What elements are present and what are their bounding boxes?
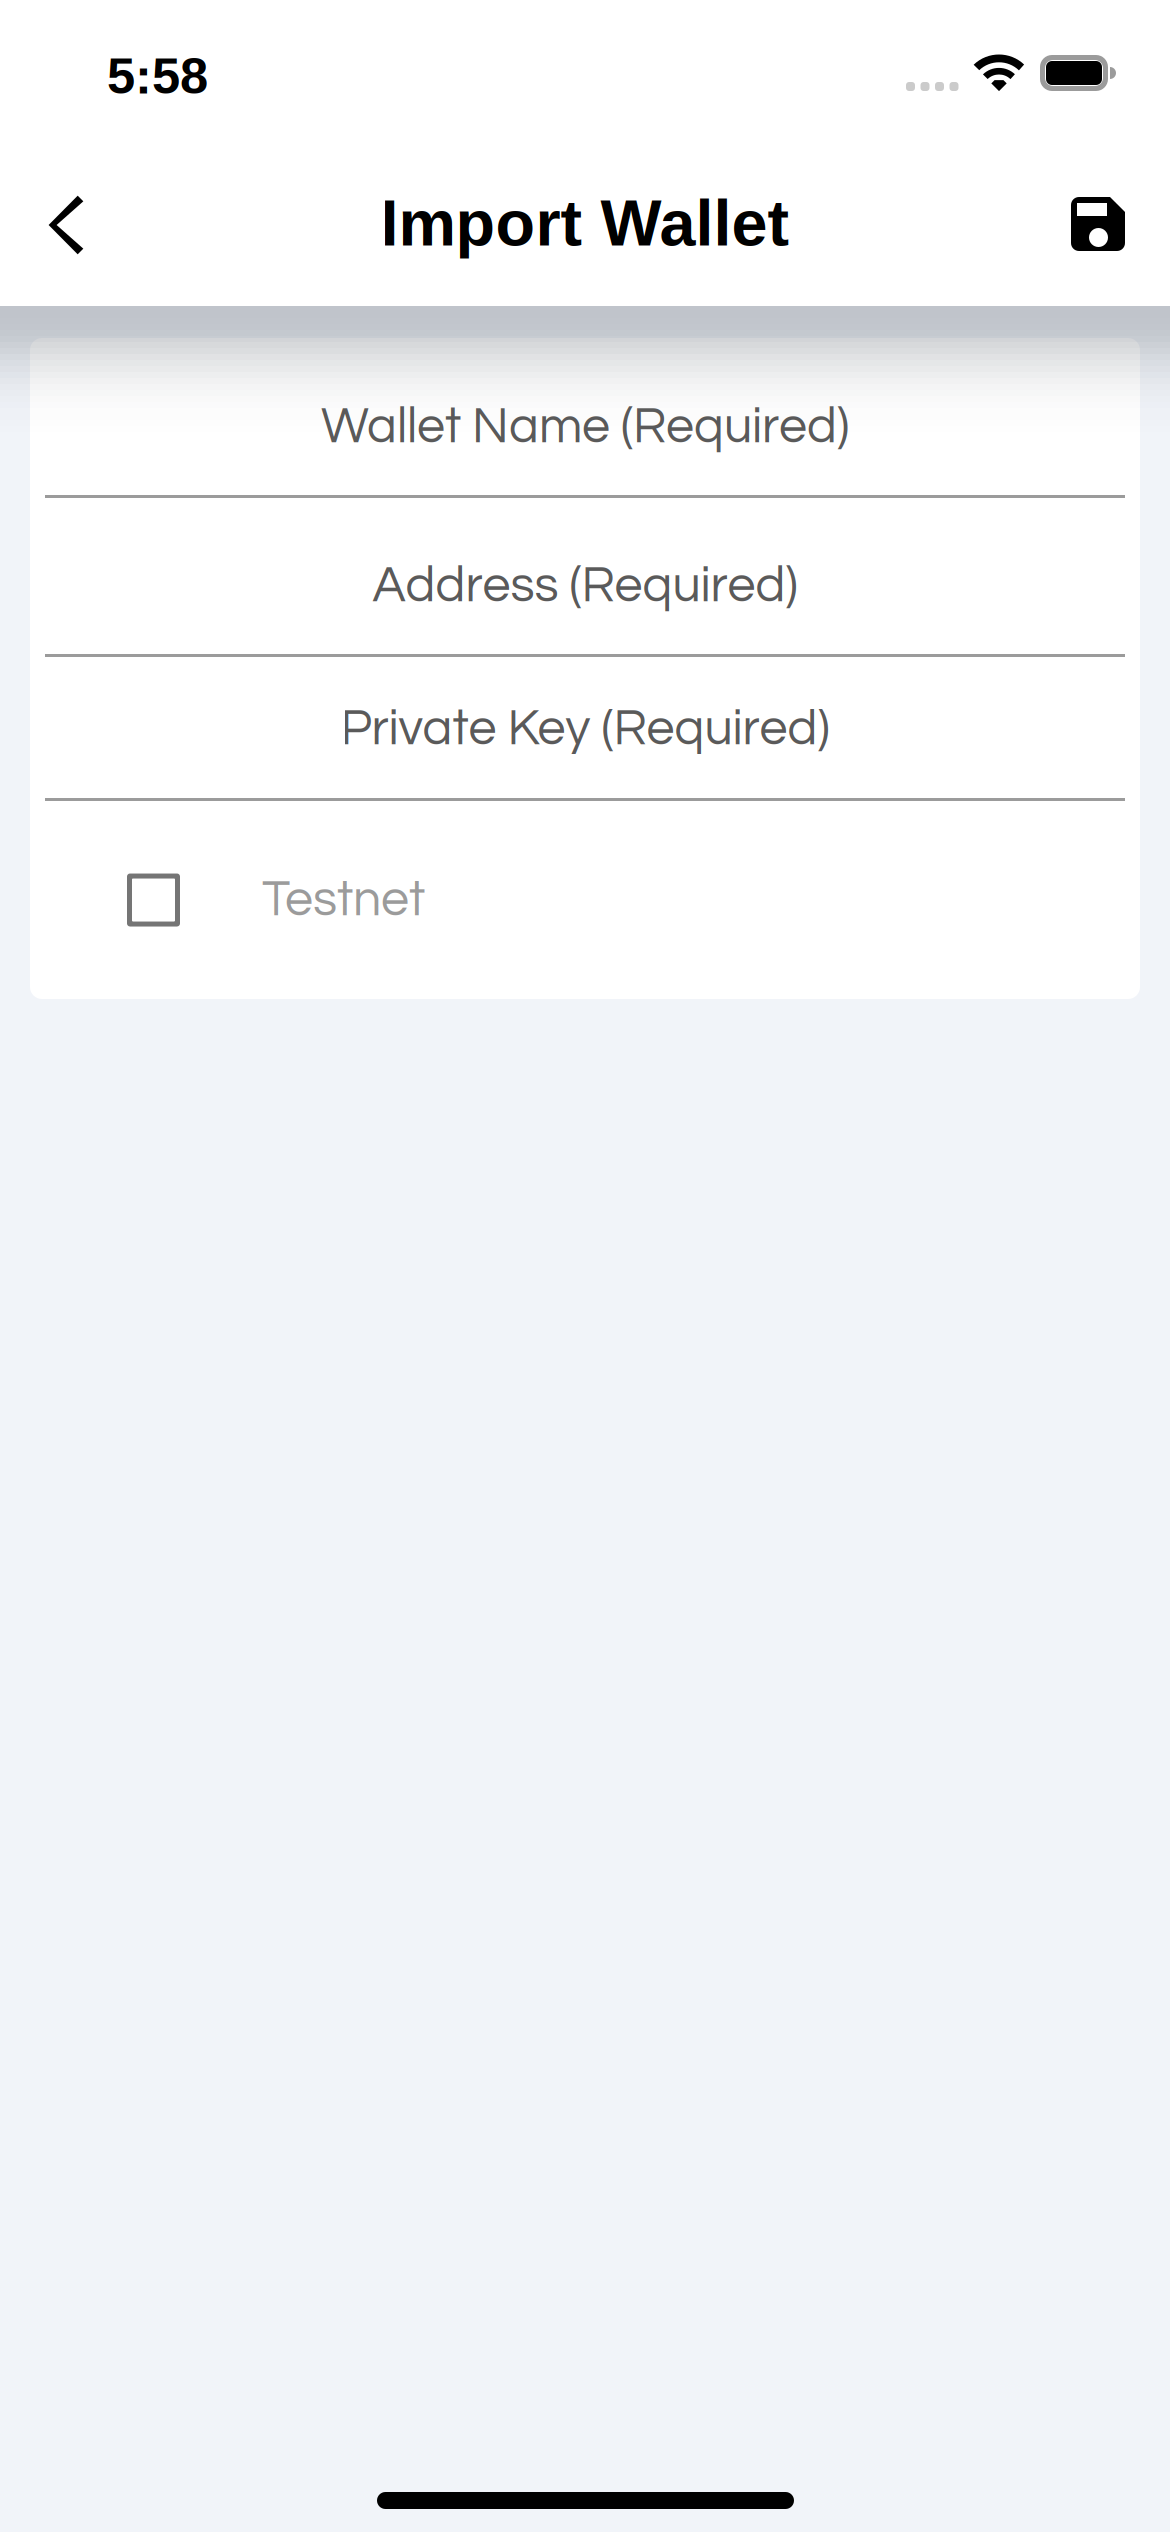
button[interactable]: Save <box>1026 140 1170 306</box>
staticText: Testnet <box>262 874 425 926</box>
button[interactable]: Private Key (Required) <box>30 704 1140 798</box>
button[interactable]: Address (Required) <box>30 561 1140 654</box>
staticText: Private Key (Required) <box>340 703 829 755</box>
button[interactable]: Testnet <box>30 801 1140 999</box>
staticText: 5:58 <box>107 48 208 104</box>
button[interactable]: Wallet Name (Required) <box>30 402 1140 495</box>
staticText: Address (Required) <box>372 560 797 612</box>
staticText: Import Wallet <box>380 187 789 259</box>
button[interactable]: Back <box>0 140 132 306</box>
staticText: Wallet Name (Required) <box>321 401 849 453</box>
